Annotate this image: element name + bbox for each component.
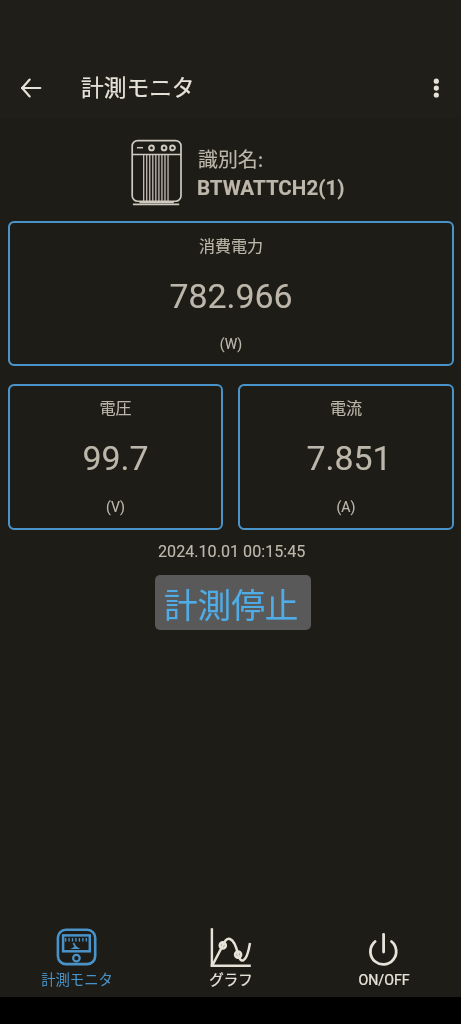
staticText: 消費電力 [8,233,454,256]
button[interactable]: Back [7,64,55,112]
staticText: 識別名: [198,144,264,173]
staticText: 電流 [238,395,454,418]
button[interactable] [8,221,454,366]
staticText: BTWATTCH2(1) [197,176,345,200]
staticText: 782.966 [8,277,454,317]
staticText: 電圧 [8,395,223,418]
staticText: 2024.10.01 00:15:45 [158,542,306,561]
button[interactable]: グラフ [154,905,308,997]
staticText: 7.851 [241,439,457,479]
staticText: 計測停止 [164,579,299,628]
button[interactable] [8,384,223,530]
button[interactable] [238,384,454,530]
button[interactable]: 計測停止 [155,575,311,630]
staticText: (A) [238,499,454,516]
staticText: (V) [8,499,223,516]
button[interactable]: ON/OFF [307,905,461,997]
button[interactable]: 計測モニタ [0,905,154,997]
staticText: 計測モニタ [81,70,195,103]
button[interactable] [125,133,365,213]
button[interactable]: More options [412,64,460,112]
staticText: 99.7 [8,439,223,479]
staticText: ON/OFF [307,972,461,989]
staticText: 計測モニタ [0,968,154,989]
staticText: グラフ [154,968,308,989]
staticText: (W) [8,336,454,353]
